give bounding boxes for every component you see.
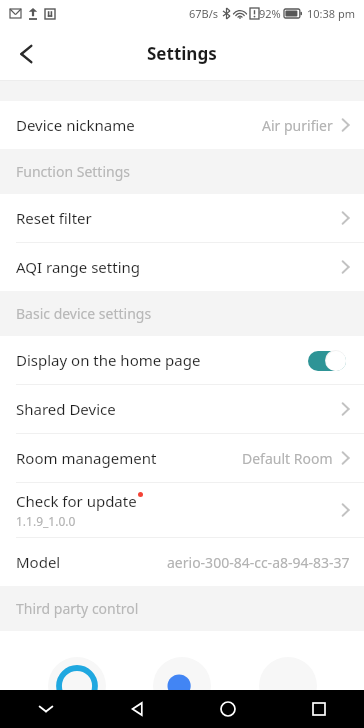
staticText: Third party control <box>16 599 139 618</box>
button[interactable]: Recents <box>273 690 364 728</box>
staticText: Display on the home page <box>16 350 201 370</box>
staticText: Device nickname <box>16 115 135 135</box>
button[interactable]: Room management <box>0 434 364 482</box>
staticText: Shared Device <box>16 399 116 419</box>
staticText: Function Settings <box>16 162 130 181</box>
staticText: Reset filter <box>16 208 92 228</box>
button[interactable]: Third party service <box>259 657 317 715</box>
button[interactable]: Model <box>0 538 364 586</box>
button[interactable]: Hide keyboard <box>0 690 91 728</box>
staticText: 67B/s <box>189 6 219 21</box>
button[interactable]: Google Assistant <box>153 657 211 715</box>
other: Display on the home page toggle <box>308 350 346 371</box>
staticText: 10:38 pm <box>307 6 356 21</box>
button[interactable]: Shared Device <box>0 385 364 433</box>
button[interactable]: Device nickname <box>0 101 364 149</box>
staticText: Settings <box>147 42 217 65</box>
staticText: Room management <box>16 448 157 468</box>
button[interactable]: Amazon Alexa <box>48 657 106 715</box>
button[interactable]: Display on the home page <box>0 336 364 384</box>
staticText: Air purifier <box>262 116 333 135</box>
staticText: Basic device settings <box>16 304 152 323</box>
staticText: Default Room <box>242 449 333 468</box>
staticText: aerio-300-84-cc-a8-94-83-37 <box>167 553 350 572</box>
button[interactable]: AQI range setting <box>0 243 364 291</box>
button[interactable]: Check for update <box>0 483 364 537</box>
staticText: Check for update <box>16 491 137 511</box>
staticText: 92% <box>259 6 281 21</box>
button[interactable]: Back <box>0 28 52 80</box>
button[interactable]: Home <box>182 690 273 728</box>
button[interactable]: Reset filter <box>0 194 364 242</box>
button[interactable]: Back <box>91 690 182 728</box>
staticText: AQI range setting <box>16 257 140 277</box>
staticText: 1.1.9_1.0.0 <box>16 513 76 529</box>
staticText: Model <box>16 552 61 572</box>
